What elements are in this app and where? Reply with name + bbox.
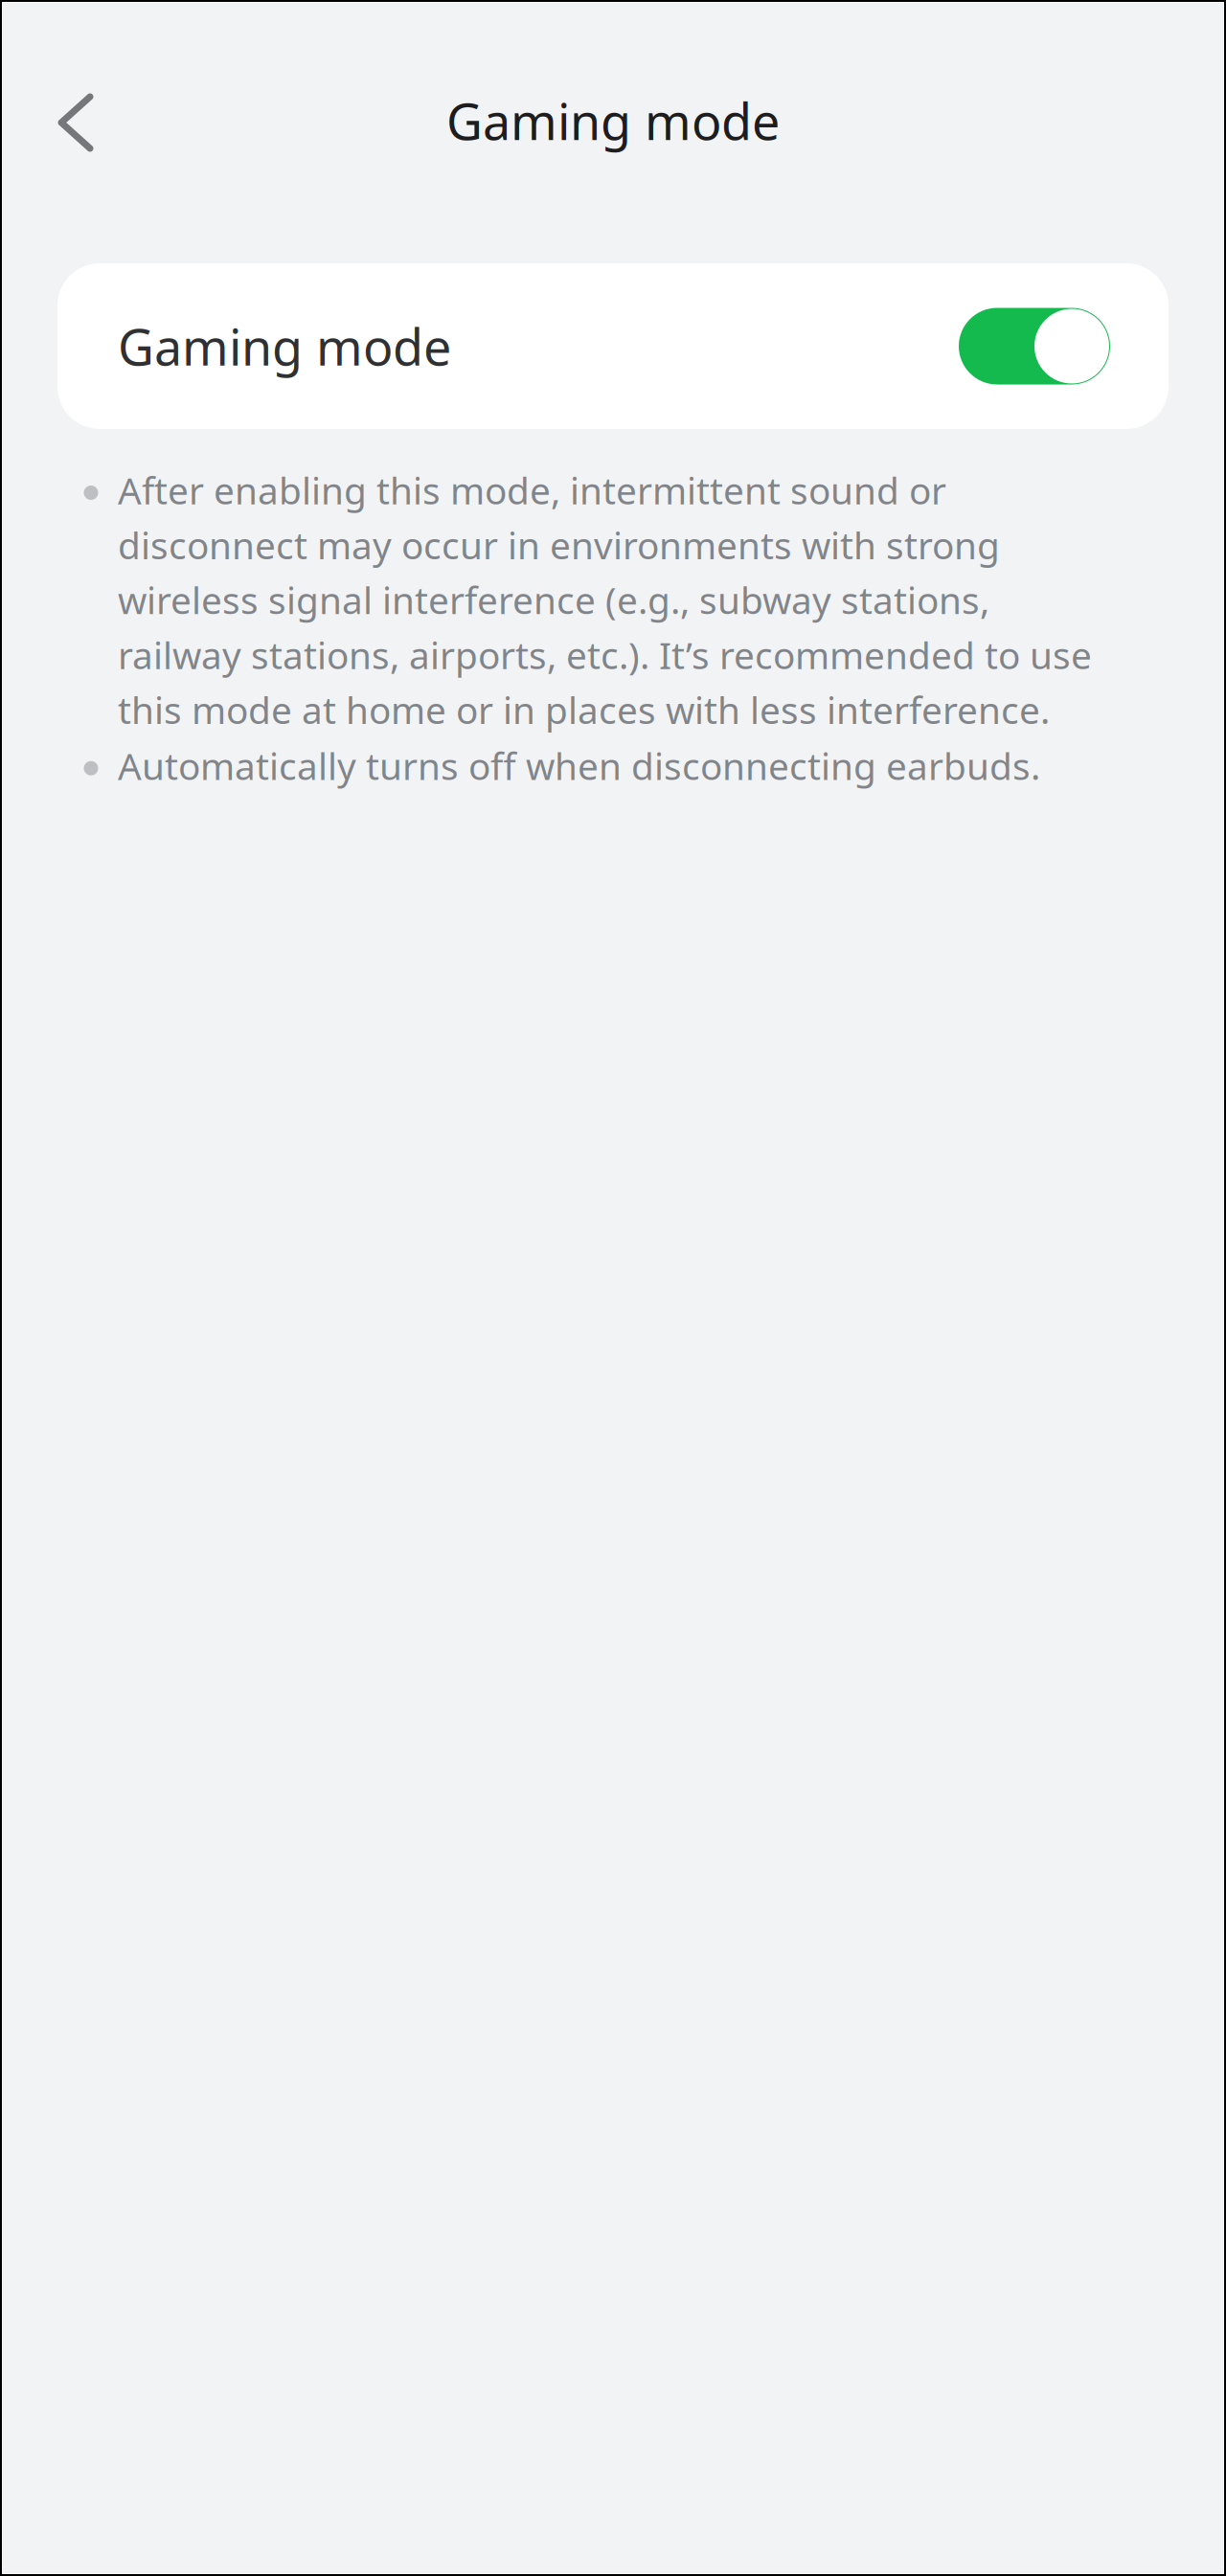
staticText: Gaming mode	[446, 88, 780, 154]
staticText: Gaming mode	[118, 313, 451, 379]
staticText: After enabling this mode, intermittent s…	[118, 465, 1092, 734]
button[interactable]: Gaming mode	[57, 263, 1169, 429]
staticText: Automatically turns off when disconnecti…	[118, 741, 1040, 790]
button[interactable]: Back	[19, 65, 132, 180]
button[interactable]: Gaming mode, on	[959, 308, 1110, 384]
